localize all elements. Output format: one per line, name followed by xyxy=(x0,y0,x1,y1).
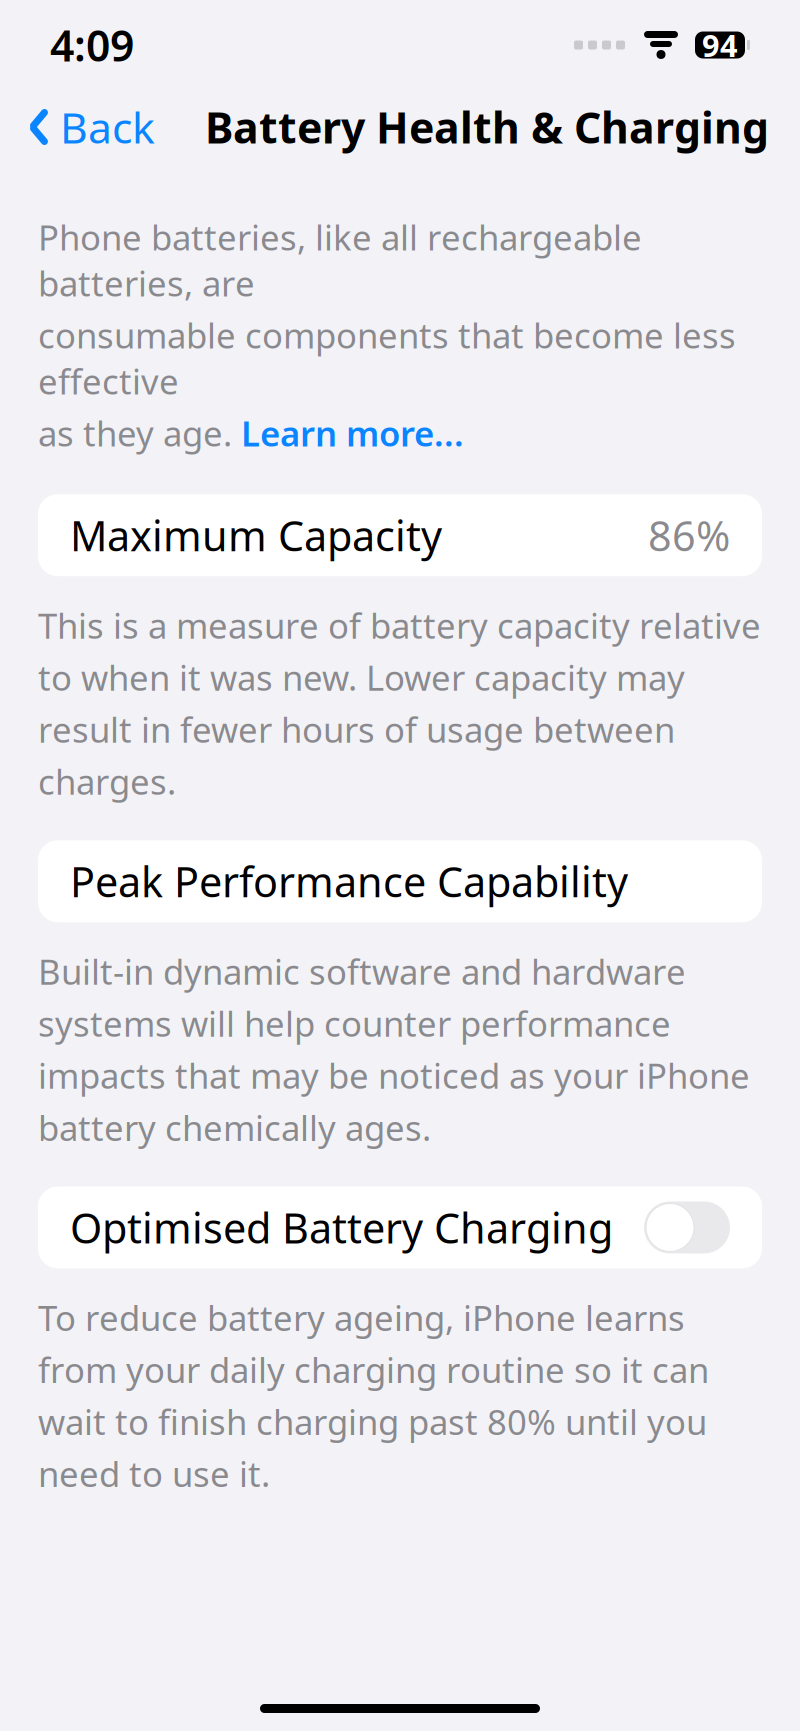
staticText: Battery Health & Charging xyxy=(205,99,769,155)
staticText: 4:09 xyxy=(50,17,134,73)
button[interactable]: Back xyxy=(22,91,161,163)
staticText: Learn more... xyxy=(241,410,464,456)
button[interactable]: Maximum Capacity xyxy=(38,494,762,576)
button[interactable]: Peak Performance Capability xyxy=(38,840,762,922)
button[interactable]: Optimised Battery Charging xyxy=(38,1186,762,1268)
staticText: To reduce battery ageing, iPhone learns … xyxy=(38,1294,709,1497)
staticText: Optimised Battery Charging xyxy=(70,1200,613,1255)
staticText: consumable components that become less e… xyxy=(38,312,736,404)
staticText: Phone batteries, like all rechargeable b… xyxy=(38,214,642,306)
staticText: Built-in dynamic software and hardware s… xyxy=(38,948,750,1150)
staticText: 94 xyxy=(702,25,738,65)
staticText: This is a measure of battery capacity re… xyxy=(38,602,761,804)
button[interactable]: Learn more... xyxy=(241,410,464,456)
staticText: as they age. xyxy=(38,410,241,456)
staticText: 86% xyxy=(648,508,730,563)
staticText: Back xyxy=(60,99,155,155)
staticText: Maximum Capacity xyxy=(70,508,442,563)
staticText: Peak Performance Capability xyxy=(70,854,628,909)
